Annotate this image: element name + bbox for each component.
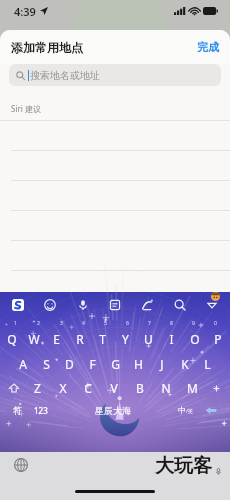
staticText: O — [190, 331, 200, 347]
button[interactable]: K — [173, 354, 196, 374]
button[interactable]: Backspace — [198, 401, 224, 419]
button[interactable]: G — [104, 354, 127, 374]
button[interactable]: Shift — [3, 378, 25, 398]
staticText: E — [53, 331, 60, 347]
staticText: 4 — [82, 320, 85, 327]
button[interactable]: M — [179, 378, 205, 398]
staticText: 4:39 — [14, 4, 36, 19]
button[interactable]: N — [153, 378, 179, 398]
button[interactable]: W — [23, 329, 45, 349]
button[interactable]: 符 — [6, 401, 28, 419]
button[interactable]: Voice input — [74, 296, 92, 314]
staticText: 8 — [170, 320, 173, 327]
button[interactable]: Account — [211, 292, 220, 301]
staticText: 中 — [178, 405, 186, 415]
staticText: Siri 建议 — [11, 103, 41, 114]
button[interactable]: B — [127, 378, 153, 398]
staticText: S — [43, 356, 50, 372]
button[interactable]: C — [75, 378, 101, 398]
button[interactable]: Y — [114, 329, 137, 349]
staticText: 搜索地名或地址 — [30, 69, 100, 82]
staticText: 6 — [126, 320, 129, 327]
button[interactable]: Clipboard — [106, 296, 124, 314]
button[interactable]: Sogou logo — [9, 296, 27, 314]
staticText: 123 — [34, 405, 48, 416]
button[interactable]: Delete — [205, 378, 227, 398]
staticText: /英 — [186, 408, 193, 415]
button[interactable]: A — [11, 354, 35, 374]
button[interactable]: Change keyboard — [14, 458, 28, 472]
staticText: 5 — [104, 320, 107, 327]
staticText: 添加常用地点 — [11, 40, 83, 55]
staticText: P — [214, 331, 222, 347]
staticText: 2 — [37, 320, 40, 327]
button[interactable]: Handwriting — [138, 296, 156, 314]
button[interactable]: Emoji — [41, 296, 59, 314]
staticText: 1 — [14, 320, 17, 327]
staticText: 符 — [13, 405, 22, 416]
button[interactable]: 完成 — [186, 34, 230, 60]
staticText: C — [84, 380, 92, 396]
staticText: 0 — [214, 320, 217, 327]
staticText: 星辰大海 — [95, 405, 131, 416]
button[interactable]: H — [127, 354, 150, 374]
staticText: W — [28, 331, 40, 347]
button[interactable]: T — [91, 329, 114, 349]
staticText: Z — [34, 380, 41, 396]
button[interactable]: J — [150, 354, 173, 374]
staticText: N — [161, 380, 171, 396]
staticText: Y — [122, 331, 129, 347]
button[interactable]: E — [45, 329, 68, 349]
button[interactable]: 星辰大海 — [54, 401, 172, 419]
button[interactable]: F — [81, 354, 104, 374]
staticText: 9 — [192, 320, 195, 327]
button[interactable]: 搜索地名或地址 — [9, 64, 221, 86]
staticText: F — [89, 356, 96, 372]
button[interactable]: O — [183, 329, 206, 349]
button[interactable]: V — [101, 378, 127, 398]
staticText: L — [204, 356, 211, 372]
button[interactable]: X — [50, 378, 75, 398]
staticText: Q — [7, 331, 17, 347]
staticText: 大玩客 — [155, 454, 212, 478]
button[interactable]: 中 — [172, 401, 198, 419]
button[interactable]: Q — [1, 329, 23, 349]
staticText: G — [111, 356, 120, 372]
staticText: 7 — [148, 320, 151, 327]
staticText: 完成 — [197, 40, 219, 54]
staticText: U — [144, 331, 153, 347]
button[interactable]: L — [196, 354, 219, 374]
staticText: B — [136, 380, 144, 396]
button[interactable]: P — [206, 329, 229, 349]
button[interactable]: S — [35, 354, 58, 374]
button[interactable]: I — [160, 329, 183, 349]
button[interactable]: Search — [171, 296, 189, 314]
button[interactable]: 123 — [28, 401, 54, 419]
button[interactable]: U — [137, 329, 160, 349]
button[interactable]: R — [68, 329, 91, 349]
staticText: X — [59, 380, 67, 396]
staticText: I — [169, 331, 174, 347]
staticText: T — [99, 331, 106, 347]
button[interactable]: Hide keyboard — [203, 296, 221, 314]
staticText: V — [110, 380, 118, 396]
staticText: R — [76, 331, 84, 347]
staticText: D — [65, 356, 74, 372]
staticText: H — [134, 356, 143, 372]
staticText: 3 — [60, 320, 63, 327]
staticText: A — [19, 356, 27, 372]
staticText: M — [187, 380, 198, 396]
button[interactable]: Z — [25, 378, 50, 398]
staticText: J — [160, 356, 164, 372]
button[interactable]: D — [58, 354, 81, 374]
staticText: K — [181, 356, 189, 372]
